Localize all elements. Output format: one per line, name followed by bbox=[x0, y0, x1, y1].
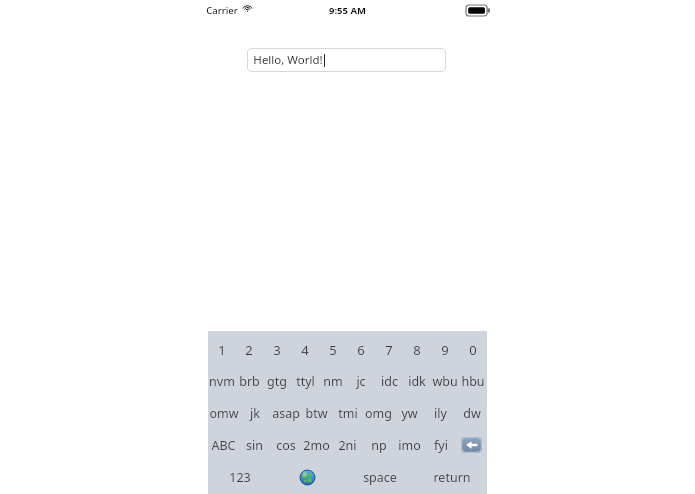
button[interactable]: Delete bbox=[456, 429, 487, 461]
button[interactable]: space bbox=[342, 461, 417, 493]
staticText: idk bbox=[408, 373, 426, 390]
button[interactable]: sin bbox=[239, 429, 270, 461]
staticText: gtg bbox=[267, 373, 287, 390]
button[interactable]: np bbox=[363, 429, 394, 461]
button[interactable]: asap bbox=[270, 397, 301, 429]
staticText: 123 bbox=[229, 469, 251, 486]
button[interactable]: jk bbox=[239, 397, 270, 429]
button[interactable]: nm bbox=[319, 365, 347, 397]
button[interactable]: hbu bbox=[459, 365, 487, 397]
staticText: return bbox=[433, 469, 471, 486]
staticText: asap bbox=[272, 405, 300, 422]
button[interactable]: Hello, World! bbox=[247, 48, 446, 72]
button[interactable]: cos bbox=[270, 429, 301, 461]
button[interactable]: fyi bbox=[425, 429, 456, 461]
button[interactable]: dw bbox=[456, 397, 487, 429]
button[interactable]: tmi bbox=[332, 397, 363, 429]
staticText: brb bbox=[239, 373, 260, 390]
staticText: 0 bbox=[469, 341, 477, 359]
staticText: ttyl bbox=[296, 373, 315, 390]
staticText: 6 bbox=[357, 341, 365, 359]
staticText: Carrier bbox=[206, 4, 238, 17]
button[interactable]: jc bbox=[347, 365, 375, 397]
button[interactable]: 1 bbox=[208, 334, 235, 365]
button[interactable]: 2 bbox=[235, 334, 263, 365]
staticText: sin bbox=[246, 437, 263, 454]
button[interactable]: 2mo bbox=[301, 429, 332, 461]
staticText: omg bbox=[365, 405, 392, 422]
staticText: 2mo bbox=[303, 437, 330, 454]
button[interactable]: omw bbox=[208, 397, 239, 429]
staticText: jk bbox=[250, 405, 260, 422]
button[interactable]: idc bbox=[375, 365, 403, 397]
staticText: omw bbox=[209, 405, 239, 422]
staticText: 4 bbox=[301, 341, 309, 359]
staticText: hbu bbox=[461, 373, 485, 390]
staticText: 3 bbox=[273, 341, 281, 359]
button[interactable]: idk bbox=[403, 365, 431, 397]
button[interactable]: 3 bbox=[263, 334, 291, 365]
button[interactable]: 123 bbox=[208, 461, 272, 493]
staticText: 2ni bbox=[338, 437, 357, 454]
staticText: wbu bbox=[432, 373, 458, 390]
staticText: 2 bbox=[245, 341, 253, 359]
button[interactable]: 5 bbox=[319, 334, 347, 365]
staticText: nvm bbox=[209, 373, 235, 390]
button[interactable]: btw bbox=[301, 397, 332, 429]
button[interactable]: ABC bbox=[208, 429, 239, 461]
staticText: imo bbox=[398, 437, 421, 454]
staticText: Hello, World! bbox=[253, 52, 323, 68]
button[interactable]: 8 bbox=[403, 334, 431, 365]
button[interactable]: 6 bbox=[347, 334, 375, 365]
button[interactable]: 7 bbox=[375, 334, 403, 365]
staticText: space bbox=[363, 469, 397, 486]
button[interactable]: ily bbox=[425, 397, 456, 429]
staticText: tmi bbox=[338, 405, 358, 422]
button[interactable]: gtg bbox=[263, 365, 291, 397]
staticText: idc bbox=[381, 373, 398, 390]
staticText: yw bbox=[401, 405, 418, 422]
button[interactable]: return bbox=[417, 461, 487, 493]
button[interactable]: 4 bbox=[291, 334, 319, 365]
staticText: jc bbox=[356, 373, 366, 390]
staticText: fyi bbox=[434, 437, 448, 454]
staticText: 1 bbox=[218, 341, 226, 359]
button[interactable]: ttyl bbox=[291, 365, 319, 397]
staticText: cos bbox=[276, 437, 296, 454]
staticText: ily bbox=[434, 405, 447, 422]
button[interactable]: omg bbox=[363, 397, 394, 429]
button[interactable]: brb bbox=[235, 365, 263, 397]
button[interactable]: 2ni bbox=[332, 429, 363, 461]
button[interactable]: 9 bbox=[431, 334, 459, 365]
staticText: np bbox=[371, 437, 387, 454]
staticText: 7 bbox=[385, 341, 393, 359]
button[interactable]: Next keyboard bbox=[272, 461, 342, 493]
staticText: 9 bbox=[441, 341, 449, 359]
staticText: dw bbox=[463, 405, 481, 422]
staticText: 8 bbox=[413, 341, 421, 359]
staticText: ABC bbox=[211, 437, 236, 454]
button[interactable]: imo bbox=[394, 429, 425, 461]
button[interactable]: wbu bbox=[431, 365, 459, 397]
button[interactable]: 0 bbox=[459, 334, 487, 365]
staticText: 9:55 AM bbox=[329, 4, 366, 17]
button[interactable]: nvm bbox=[208, 365, 235, 397]
button[interactable]: yw bbox=[394, 397, 425, 429]
staticText: nm bbox=[323, 373, 343, 390]
staticText: btw bbox=[305, 405, 328, 422]
staticText: 5 bbox=[329, 341, 337, 359]
